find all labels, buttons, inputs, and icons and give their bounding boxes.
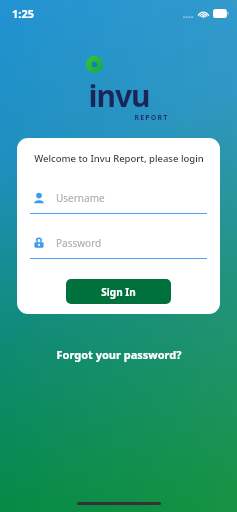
staticText: REPORT (134, 113, 169, 123)
staticText: Welcome to Invu Report, please login (34, 152, 204, 165)
staticText: Forgot your password? (56, 347, 182, 362)
staticText: invu (88, 75, 150, 116)
staticText: 1:25 (12, 6, 34, 21)
other: Username (30, 189, 48, 207)
button[interactable]: Forgot your password? (46, 344, 192, 365)
staticText: Username (56, 191, 105, 205)
other: Password (30, 234, 48, 252)
button[interactable]: Password (30, 234, 207, 259)
staticText: Sign In (101, 285, 136, 299)
button[interactable]: Sign In (66, 279, 171, 304)
button[interactable]: Username (30, 189, 207, 214)
staticText: Password (56, 236, 102, 250)
